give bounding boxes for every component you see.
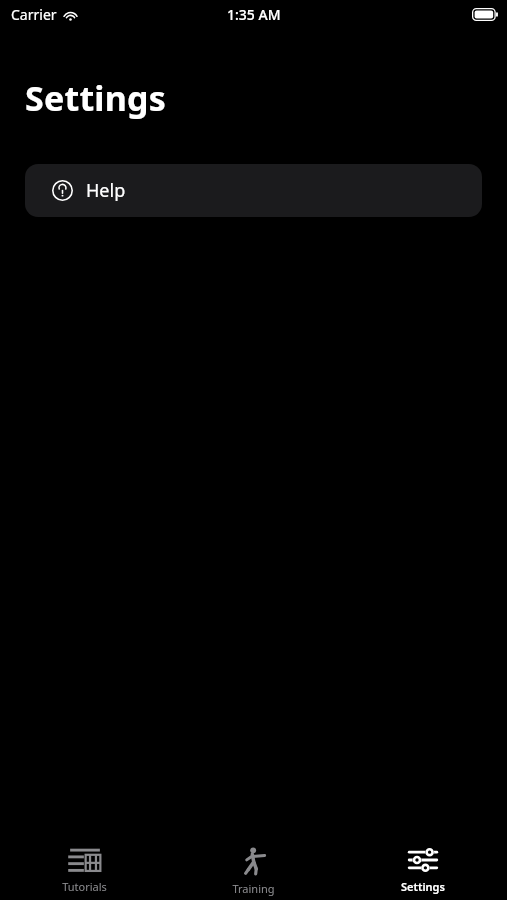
staticText: Help [86,178,126,203]
button[interactable]: Training [169,838,338,896]
staticText: Settings [401,879,445,894]
button[interactable]: Tutorials [0,838,169,894]
staticText: 1:35 AM [227,5,281,24]
staticText: Carrier [11,5,57,24]
other: Training [240,847,268,875]
other: Settings [408,847,438,873]
staticText: Training [232,881,275,896]
staticText: Tutorials [62,879,107,894]
button[interactable]: Settings [338,838,507,894]
button[interactable]: Help [25,164,482,217]
staticText: Settings [25,75,166,121]
other: Tutorials [69,847,101,873]
